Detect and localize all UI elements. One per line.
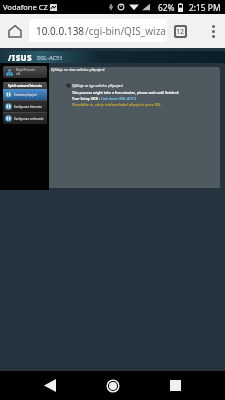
button[interactable]: Kontrola připojení xyxy=(3,89,47,100)
staticText: sítě xyxy=(16,72,21,76)
staticText: Přesvědčte se, zda je telefonní kabel př… xyxy=(72,102,162,106)
button[interactable]: Recent apps xyxy=(158,371,192,400)
staticText: DSL-AC51 xyxy=(37,54,63,61)
staticText: /ISUS xyxy=(8,52,32,63)
staticText: Kontrola připojení xyxy=(14,93,37,97)
staticText: 10.0.0.138 xyxy=(36,24,85,38)
staticText: Rychlé nastavení Internetu xyxy=(8,84,42,87)
staticText: 62% xyxy=(158,2,175,13)
staticText: /cgi-bin/QIS_wiza xyxy=(85,24,166,38)
staticText: Zjišťuje se stav vašeho připojení xyxy=(51,67,105,72)
staticText: Konfigurace směrovače xyxy=(14,117,44,121)
staticText: Vodafone CZ xyxy=(3,2,48,12)
button[interactable]: Home xyxy=(1,14,29,48)
button[interactable]: Back xyxy=(33,371,67,400)
button[interactable]: Konfigurace Internetu xyxy=(3,101,47,112)
staticText: Mapa/Průvodce xyxy=(16,68,36,72)
staticText: This process might take a few minutes, p… xyxy=(72,90,180,94)
staticText: Zjišťuje se typ vašeho připojení xyxy=(72,83,123,88)
button[interactable]: More options xyxy=(201,18,225,44)
button[interactable]: Home xyxy=(96,371,130,400)
staticText: Your Setup SSID : xyxy=(72,96,101,100)
button[interactable]: Konfigurace směrovače xyxy=(3,113,47,124)
button[interactable]: Tabs xyxy=(167,18,193,44)
button[interactable]: Mapa/Průvodce xyxy=(3,66,47,78)
staticText: Konfigurace Internetu xyxy=(14,105,42,109)
button[interactable]: 10.0.0.138 xyxy=(29,19,167,42)
staticText: 12 xyxy=(176,27,185,36)
staticText: Link down (DSL-AC51) xyxy=(101,96,137,100)
staticText: 2:15 PM xyxy=(189,2,221,13)
